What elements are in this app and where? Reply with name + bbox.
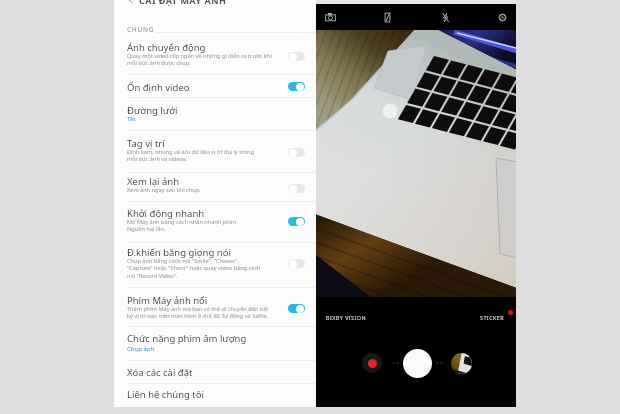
staticText: Tắt (127, 115, 136, 123)
button[interactable] (114, 239, 316, 287)
staticText: "Capture" hoặc "Shoot" hoặc quay video b… (127, 264, 261, 272)
button[interactable] (114, 97, 316, 130)
button[interactable]: Flash off (435, 7, 455, 27)
button[interactable]: Timer (377, 7, 397, 27)
button[interactable] (114, 74, 316, 97)
button[interactable]: Switch camera (320, 7, 340, 27)
button[interactable] (114, 287, 316, 326)
staticText: Ổn định video (127, 81, 190, 94)
staticText: mỗi bức ảnh được chụp. (127, 59, 191, 67)
staticText: Quay một video clip ngắn về những gì diễ… (127, 52, 272, 60)
button[interactable]: Camera settings title bar (114, 0, 316, 13)
staticText: CHUNG (127, 25, 155, 34)
button[interactable]: Gallery (451, 353, 472, 374)
button[interactable] (114, 381, 316, 401)
button[interactable]: Toggle off (288, 52, 305, 61)
button[interactable] (114, 359, 316, 383)
staticText: Xóa các cài đặt (127, 366, 193, 379)
button[interactable]: Toggle off (288, 184, 305, 193)
staticText: Thêm phím Máy ảnh mà bạn có thể di chuyể… (127, 305, 269, 313)
staticText: Nguồn hai lần. (127, 225, 166, 233)
staticText: nói "Record Video". (127, 272, 178, 280)
button[interactable]: Camera settings (492, 7, 512, 27)
staticText: Đính kèm, nhúng và lưu dữ liệu vị trí đị… (127, 148, 254, 156)
staticText: mỗi bức ảnh và videos. (127, 155, 188, 163)
button[interactable] (114, 325, 316, 360)
button[interactable]: Take photo (403, 349, 432, 378)
button[interactable] (114, 200, 316, 242)
button[interactable]: Toggle on (288, 304, 305, 313)
staticText: Đ.khiển bằng giọng nói (127, 246, 231, 259)
staticText: Khởi động nhanh (127, 207, 205, 220)
button[interactable] (114, 168, 316, 201)
staticText: Chụp ảnh (127, 345, 155, 353)
staticText: Ánh chuyển động (127, 41, 206, 54)
button[interactable] (114, 34, 316, 74)
staticText: CÀI ĐẶT MÁY ẢNH (139, 0, 227, 6)
staticText: Tag vị trí (127, 137, 165, 150)
staticText: Chức năng phim âm lượng (127, 332, 247, 345)
staticText: Đường lưới (127, 104, 178, 117)
button[interactable]: BIXBY VISION (326, 314, 367, 321)
staticText: Phím Máy ảnh nổi (127, 294, 208, 307)
staticText: kỳ vị trí nào trên màn hình ở chế độ Tự … (127, 312, 268, 320)
button[interactable] (114, 130, 316, 172)
staticText: Xem lại ảnh (127, 175, 180, 188)
button[interactable]: Record video (362, 353, 382, 373)
button[interactable]: Toggle off (288, 148, 305, 157)
staticText: Chụp ảnh bằng cách nói "Smile", "Cheese"… (127, 257, 239, 265)
button[interactable]: Toggle on (288, 217, 305, 226)
button[interactable]: STICKER (480, 314, 505, 321)
staticText: Mở Máy ảnh bằng cách nhấn nhanh phím (127, 218, 237, 226)
staticText: Liên hệ chúng tôi (127, 388, 204, 401)
button[interactable]: Toggle on (288, 82, 305, 91)
staticText: Xem ảnh ngay sau khi chụp. (127, 186, 201, 194)
button[interactable]: Toggle off (288, 259, 305, 268)
